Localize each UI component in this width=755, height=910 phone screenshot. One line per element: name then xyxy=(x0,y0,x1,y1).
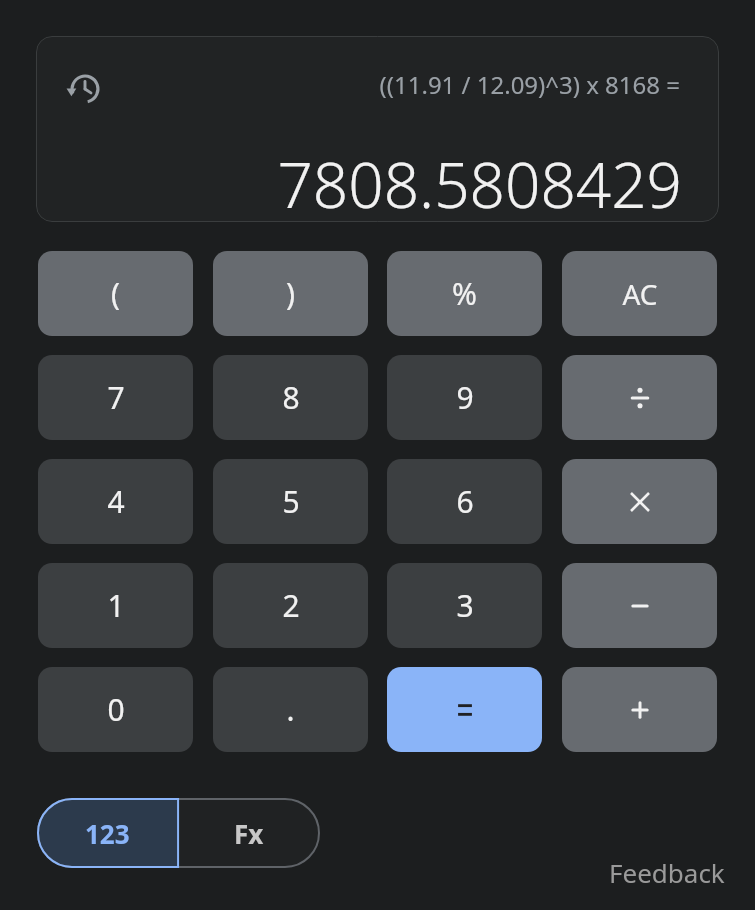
button[interactable]: 5 xyxy=(213,459,368,544)
staticText: 0 xyxy=(107,689,125,730)
staticText: . xyxy=(286,689,295,730)
button[interactable]: Subtract xyxy=(562,563,717,648)
button[interactable]: 8 xyxy=(213,355,368,440)
staticText: AC xyxy=(622,275,658,313)
button[interactable]: Add xyxy=(562,667,717,752)
button[interactable]: 2 xyxy=(213,563,368,648)
button[interactable]: History xyxy=(63,67,107,111)
button[interactable]: ) xyxy=(213,251,368,336)
staticText: 7808.5808429 xyxy=(277,142,682,222)
staticText: 2 xyxy=(282,585,300,626)
button[interactable]: AC xyxy=(562,251,717,336)
staticText: ) xyxy=(286,273,295,314)
button[interactable]: Divide xyxy=(562,355,717,440)
button[interactable]: 9 xyxy=(387,355,542,440)
button[interactable]: Equals xyxy=(387,667,542,752)
staticText: 4 xyxy=(107,481,125,522)
button[interactable]: 6 xyxy=(387,459,542,544)
button[interactable]: % xyxy=(387,251,542,336)
staticText: Feedback xyxy=(609,855,725,890)
button[interactable]: 1 xyxy=(38,563,193,648)
staticText: 7 xyxy=(107,377,125,418)
button[interactable]: 0 xyxy=(38,667,193,752)
staticText: ((11.91 / 12.09)^3) x 8168 = xyxy=(379,68,680,101)
staticText: ( xyxy=(111,273,120,314)
staticText: 123 xyxy=(85,816,130,851)
button[interactable]: Feedback xyxy=(585,852,725,892)
button[interactable]: . xyxy=(213,667,368,752)
staticText: Fx xyxy=(234,816,264,851)
staticText: 8 xyxy=(282,377,300,418)
button[interactable]: 7 xyxy=(38,355,193,440)
staticText: 3 xyxy=(456,585,474,626)
button[interactable]: ( xyxy=(38,251,193,336)
staticText: 5 xyxy=(282,481,300,522)
button[interactable]: Fx xyxy=(178,798,320,868)
button[interactable]: Multiply xyxy=(562,459,717,544)
button[interactable]: 3 xyxy=(387,563,542,648)
button[interactable]: 123 xyxy=(37,798,178,868)
staticText: 9 xyxy=(456,377,474,418)
staticText: % xyxy=(452,273,477,314)
button[interactable]: 4 xyxy=(38,459,193,544)
staticText: 1 xyxy=(107,585,125,626)
staticText: 6 xyxy=(456,481,474,522)
